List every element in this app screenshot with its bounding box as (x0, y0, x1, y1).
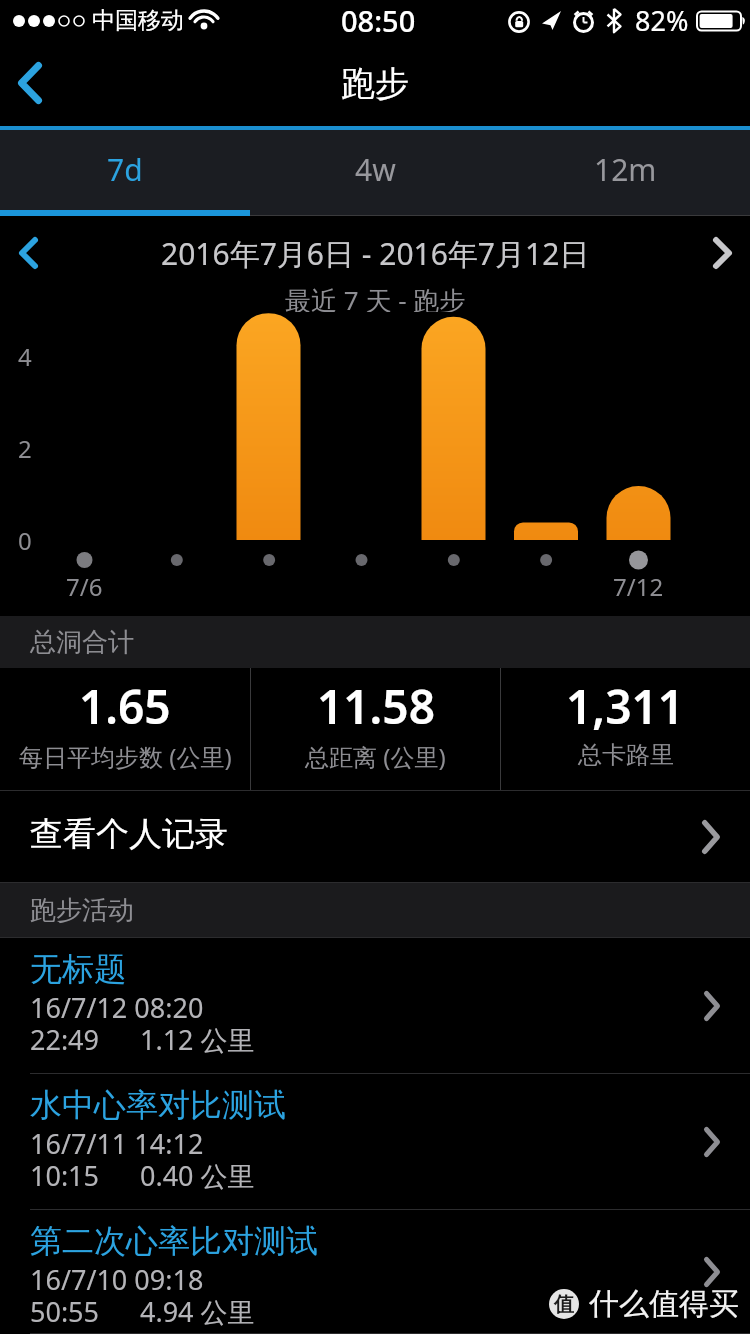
button[interactable]: 查看个人记录 (0, 791, 750, 882)
button[interactable] (694, 229, 750, 277)
staticText: 12m (594, 149, 657, 190)
staticText: 什么值得买 (589, 1285, 739, 1323)
staticText: 最近 7 天 - 跑步 (285, 282, 466, 312)
staticText: 0.40 公里 (140, 1157, 255, 1194)
button[interactable] (0, 229, 56, 277)
staticText: 2016年7月6日 - 2016年7月12日 (161, 233, 590, 274)
staticText: 7/6 (66, 570, 103, 603)
staticText: 1.65 (79, 675, 171, 738)
button[interactable]: 无标题 (0, 938, 750, 1074)
staticText: 7/12 (613, 570, 664, 603)
staticText: 10:15 (30, 1157, 100, 1194)
button[interactable]: 水中心率对比测试 (0, 1074, 750, 1210)
staticText: 16/7/11 14:12 (30, 1125, 204, 1162)
staticText: 值 (554, 1292, 574, 1317)
staticText: 总洞合计 (30, 626, 134, 659)
staticText: 7d (107, 149, 143, 190)
staticText: 0 (18, 524, 32, 557)
staticText: 11.58 (317, 675, 435, 738)
staticText: 总距离 (公里) (305, 740, 446, 773)
staticText: 2 (18, 432, 32, 465)
button[interactable]: 12m (500, 130, 750, 216)
button[interactable]: 4w (250, 130, 500, 216)
staticText: 16/7/12 08:20 (30, 989, 204, 1026)
staticText: 无标题 (30, 949, 126, 989)
staticText: 4.94 公里 (140, 1293, 255, 1330)
staticText: 第二次心率比对测试 (30, 1221, 318, 1261)
staticText: 每日平均步数 (公里) (19, 740, 232, 773)
staticText: 1.12 公里 (140, 1021, 255, 1058)
button[interactable]: 第二次心率比对测试 (0, 1210, 750, 1334)
button[interactable] (0, 53, 60, 113)
staticText: 水中心率对比测试 (30, 1085, 286, 1125)
staticText: 4w (355, 149, 396, 190)
staticText: 跑步 (341, 62, 409, 105)
staticText: 82% (635, 2, 689, 39)
staticText: 08:50 (341, 1, 416, 40)
staticText: 16/7/10 09:18 (30, 1261, 204, 1298)
staticText: 22:49 (30, 1021, 100, 1058)
staticText: 跑步活动 (30, 894, 134, 927)
staticText: 4 (18, 340, 32, 373)
button[interactable]: 7d (0, 130, 250, 216)
staticText: 50:55 (30, 1293, 100, 1330)
staticText: 总卡路里 (578, 740, 674, 770)
staticText: 中国移动 (92, 6, 184, 35)
staticText: 1,311 (566, 675, 685, 738)
staticText: 查看个人记录 (30, 813, 228, 855)
